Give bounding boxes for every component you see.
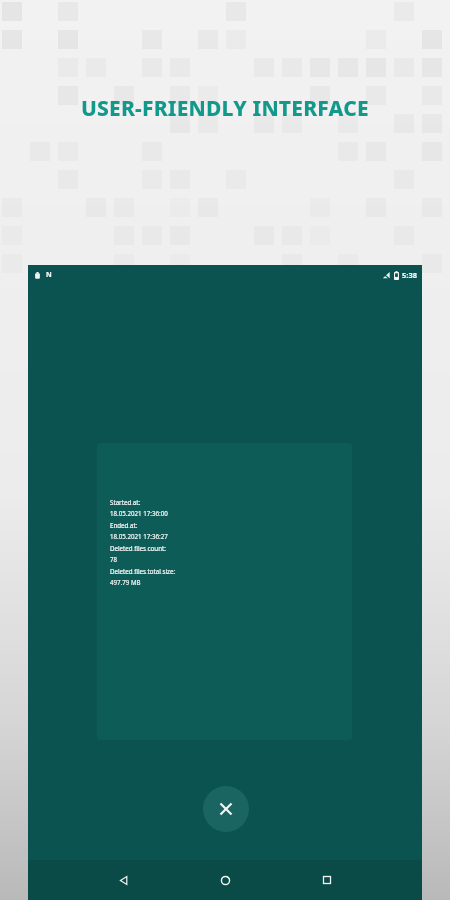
button[interactable]: Home bbox=[208, 863, 242, 897]
staticText: 5:38 bbox=[402, 270, 417, 280]
staticText: 18.05.2021 17:36:27 bbox=[110, 532, 168, 540]
button[interactable]: Cancel bbox=[203, 786, 249, 832]
staticText: USER-FRIENDLY INTERFACE bbox=[81, 94, 369, 123]
staticText: Ended at: bbox=[110, 521, 138, 529]
button[interactable]: Back bbox=[106, 863, 140, 897]
staticText: 78 bbox=[110, 555, 118, 563]
staticText: 18.05.2021 17:36:00 bbox=[110, 509, 168, 517]
staticText: N bbox=[46, 270, 52, 280]
staticText: Started at: bbox=[110, 498, 141, 506]
staticText: Deleted files count: bbox=[110, 544, 166, 552]
button[interactable]: Recent apps bbox=[310, 863, 344, 897]
staticText: 497.79 MB bbox=[110, 578, 141, 586]
staticText: Deleted files total size: bbox=[110, 567, 176, 575]
button[interactable]: Started at: bbox=[97, 443, 352, 740]
